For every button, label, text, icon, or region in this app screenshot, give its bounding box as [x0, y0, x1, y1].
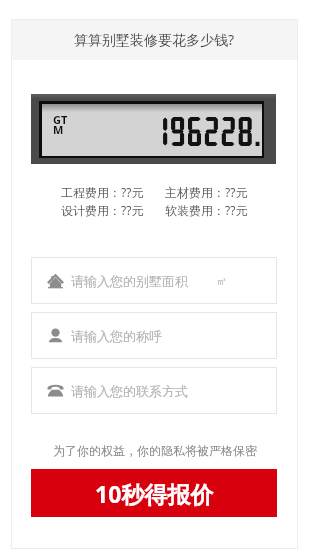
button[interactable]: Contact number: [31, 367, 277, 414]
staticText: 设计费用：??元: [61, 202, 144, 218]
button[interactable]: 10秒得报价: [31, 469, 277, 517]
staticText: 为了你的权益，你的隐私将被严格保密: [53, 443, 257, 458]
button[interactable]: Villa area: [31, 257, 277, 304]
staticText: GT: [53, 112, 68, 127]
staticText: 请输入您的称呼: [71, 328, 162, 344]
other: Your name: [47, 327, 64, 344]
staticText: 请输入您的别墅面积: [71, 273, 188, 289]
button[interactable]: Your name: [31, 312, 277, 359]
staticText: M: [53, 122, 64, 137]
staticText: 主材费用：??元: [165, 184, 248, 200]
other: Villa area: [47, 272, 64, 289]
staticText: 请输入您的联系方式: [71, 383, 188, 399]
staticText: 算算别墅装修要花多少钱?: [74, 30, 235, 49]
staticText: 工程费用：??元: [61, 184, 144, 200]
staticText: ㎡: [216, 274, 227, 288]
other: Contact number: [47, 382, 64, 399]
staticText: 软装费用：??元: [165, 202, 248, 218]
staticText: 10秒得报价: [95, 478, 214, 509]
